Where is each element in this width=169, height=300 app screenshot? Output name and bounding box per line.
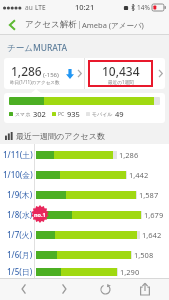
staticText: LTE — [35, 3, 46, 12]
staticText: PC — [58, 111, 65, 118]
staticText: スマホ — [15, 111, 31, 117]
staticText: 1,290 — [120, 267, 140, 277]
button[interactable]: Reload — [95, 278, 115, 300]
staticText: 1/9(木) — [7, 189, 33, 200]
staticText: 1,679 — [144, 210, 164, 220]
staticText: 14% — [137, 3, 150, 12]
button[interactable]: Back — [14, 278, 34, 300]
staticText: au — [25, 3, 33, 12]
button[interactable]: 1/9(木) — [0, 184, 169, 204]
staticText: 1,286 — [11, 63, 42, 79]
staticText: 昨日(1/11)のアクセス数 — [10, 79, 60, 85]
staticText: 1/8(水) — [7, 209, 33, 220]
button[interactable]: More — [156, 58, 165, 89]
button[interactable]: 1,286 — [4, 58, 84, 89]
staticText: no.1 — [34, 211, 46, 218]
staticText: 1/11(土) — [3, 149, 33, 160]
staticText: 10:21 — [75, 2, 95, 12]
button[interactable]: More — [75, 58, 84, 89]
staticText: アクセス解析 — [25, 19, 77, 30]
button[interactable]: 1/11(土) — [0, 144, 169, 164]
button[interactable]: Share — [135, 278, 155, 300]
button[interactable]: 1/8(水) — [0, 204, 169, 224]
button[interactable]: Back — [2, 14, 22, 35]
button[interactable]: Forward — [54, 278, 74, 300]
button[interactable]: 10,434 — [85, 58, 165, 89]
staticText: 1,642 — [142, 230, 162, 240]
staticText: 最近一週間のアクセス数 — [16, 131, 105, 141]
button[interactable]: 1/7(火) — [0, 224, 169, 244]
staticText: 10,434 — [102, 63, 140, 79]
button[interactable]: 1/5(日) — [0, 264, 169, 278]
staticText: 1,442 — [129, 170, 149, 180]
staticText: 1,286 — [119, 150, 139, 160]
staticText: 1,587 — [139, 190, 159, 200]
staticText: Ameba (アメーバ) — [82, 20, 144, 30]
staticText: 302 — [33, 109, 46, 119]
staticText: (-156) — [43, 71, 59, 79]
staticText: 935 — [67, 109, 80, 119]
button[interactable]: 1/10(金) — [0, 164, 169, 184]
staticText: 1/10(金) — [3, 169, 33, 180]
staticText: 49 — [115, 109, 124, 119]
staticText: チームMURATA — [7, 42, 68, 54]
staticText: 1,508 — [134, 250, 154, 260]
staticText: モバイル — [92, 111, 113, 117]
staticText: 1/6(月) — [7, 249, 33, 260]
button[interactable]: 1/6(月) — [0, 244, 169, 264]
staticText: 1/7(火) — [7, 229, 33, 240]
staticText: 最近の1週間 — [108, 79, 134, 85]
staticText: 1/5(日) — [7, 266, 33, 277]
